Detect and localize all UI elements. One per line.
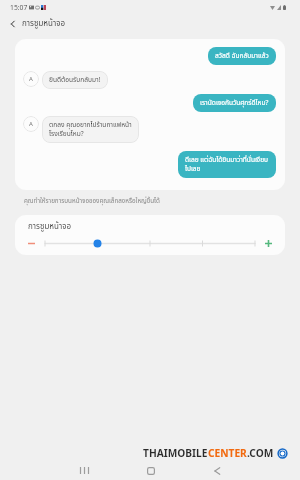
staticText: การซูมหน้าจอ [28, 221, 72, 233]
button[interactable]: Back [5, 16, 21, 32]
button[interactable]: Home [133, 461, 169, 480]
button[interactable]: ตกลง คุณอยากไปร้านกาแฟหน้า โรงเรียนไหม? [42, 116, 139, 143]
staticText: THAIMOBILE [143, 446, 208, 460]
staticText: A [29, 75, 33, 83]
button[interactable]: สวัสดี ฉันกลับมาแล้ว [208, 47, 276, 65]
staticText: ดีเลย แต่ฉันได้ยินมาว่าที่นั่นเงียบ ไปเล… [185, 155, 269, 174]
staticText: 15:07 [10, 3, 28, 12]
staticText: คุณทำให้รายการบนหน้าจอของคุณเล็กลงหรือให… [24, 196, 160, 206]
button[interactable]: Recents [66, 461, 102, 480]
button[interactable]: ยินดีต้อนรับกลับมา! [42, 71, 108, 89]
staticText: เรานัดเจอกันวันศุกร์ดีไหม? [200, 98, 269, 108]
button[interactable]: เรานัดเจอกันวันศุกร์ดีไหม? [193, 94, 276, 112]
button[interactable]: ดีเลย แต่ฉันได้ยินมาว่าที่นั่นเงียบ ไปเล… [178, 151, 276, 178]
button[interactable]: Back [199, 461, 235, 480]
staticText: .COM [247, 446, 274, 460]
staticText: การซูมหน้าจอ [22, 18, 66, 30]
staticText: ยินดีต้อนรับกลับมา! [49, 75, 101, 85]
staticText: A [29, 120, 33, 128]
staticText: ตกลง คุณอยากไปร้านกาแฟหน้า โรงเรียนไหม? [49, 120, 132, 139]
staticText: สวัสดี ฉันกลับมาแล้ว [215, 51, 269, 61]
staticText: CENTER [208, 446, 247, 460]
